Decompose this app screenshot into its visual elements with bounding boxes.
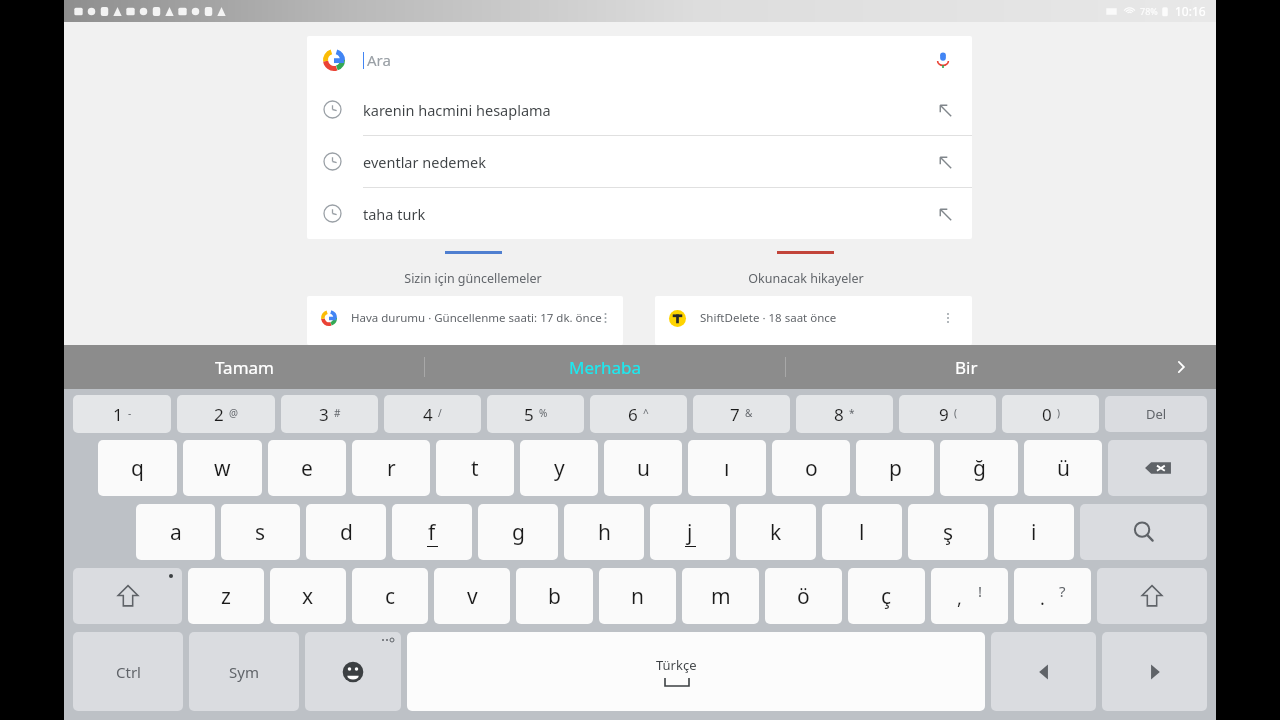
staticText: r [387, 454, 396, 483]
button[interactable]: Backspace [1108, 440, 1207, 496]
button[interactable]: Okunacak hikayeler [639, 251, 972, 287]
button[interactable]: Shift [1097, 568, 1207, 624]
staticText: taha turk [363, 204, 426, 224]
button[interactable]: s [221, 504, 300, 560]
button[interactable]: f [392, 504, 472, 560]
button[interactable]: taha turk [307, 188, 972, 239]
button[interactable]: Voice search [930, 47, 956, 73]
button[interactable]: 0 [1002, 395, 1099, 433]
button[interactable]: 6 [590, 395, 687, 433]
staticText: ShiftDelete · 18 saat önce [700, 310, 837, 326]
button[interactable]: 4 [384, 395, 481, 433]
button[interactable]: ü [1024, 440, 1102, 496]
staticText: ö [797, 582, 810, 611]
button[interactable]: Search [1080, 504, 1207, 560]
staticText: - [128, 406, 132, 420]
button[interactable]: w [183, 440, 262, 496]
button[interactable]: More options [602, 308, 609, 328]
button[interactable]: 8 [796, 395, 893, 433]
button[interactable]: ş [908, 504, 988, 560]
staticText: 9 [939, 403, 949, 426]
staticText: 7 [730, 403, 740, 426]
staticText: b [548, 582, 561, 611]
button[interactable]: Space [407, 632, 985, 711]
button[interactable]: e [268, 440, 346, 496]
button[interactable]: ö [765, 568, 842, 624]
button[interactable]: Tamam [64, 345, 424, 389]
button[interactable]: n [599, 568, 676, 624]
staticText: ş [943, 518, 954, 547]
staticText: . [1040, 586, 1045, 611]
staticText: Sym [229, 662, 259, 682]
staticText: ı [724, 454, 730, 483]
button[interactable]: l [822, 504, 902, 560]
button[interactable]: Previous [991, 632, 1096, 711]
button[interactable]: p [856, 440, 934, 496]
button[interactable]: Ctrl [73, 632, 183, 711]
button[interactable]: Del [1105, 396, 1207, 432]
button[interactable]: 2 [177, 395, 275, 433]
button[interactable]: ShiftDelete · 18 saat önce [655, 296, 972, 345]
button[interactable]: eventlar nedemek [307, 136, 972, 188]
button[interactable]: u [604, 440, 682, 496]
button[interactable]: t [436, 440, 514, 496]
button[interactable]: y [520, 440, 598, 496]
staticText: karenin hacmini hesaplama [363, 100, 551, 120]
button[interactable]: karenin hacmini hesaplama [307, 84, 972, 136]
button[interactable]: More suggestions [1146, 345, 1216, 389]
button[interactable]: ğ [940, 440, 1018, 496]
button[interactable]: More options [938, 308, 958, 328]
staticText: Sizin için güncellemeler [404, 270, 542, 287]
button[interactable]: g [478, 504, 558, 560]
button[interactable]: ? [1014, 568, 1091, 624]
staticText: 3 [319, 403, 329, 426]
button[interactable]: 9 [899, 395, 996, 433]
button[interactable]: d [306, 504, 386, 560]
button[interactable]: Merhaba [425, 345, 785, 389]
button[interactable]: Emoji [305, 632, 401, 711]
button[interactable]: Ara [307, 36, 972, 84]
button[interactable]: Sizin için güncellemeler [307, 251, 639, 287]
staticText: & [745, 406, 753, 420]
staticText: g [512, 518, 525, 547]
button[interactable]: Next [1102, 632, 1207, 711]
button[interactable]: a [136, 504, 215, 560]
button[interactable]: b [516, 568, 593, 624]
button[interactable]: r [352, 440, 430, 496]
staticText: q [131, 454, 144, 483]
staticText: t [471, 454, 479, 483]
button[interactable]: 1 [73, 395, 171, 433]
button[interactable]: j [650, 504, 730, 560]
button[interactable]: ! [931, 568, 1008, 624]
staticText: Merhaba [569, 356, 642, 379]
button[interactable]: Shift [73, 568, 182, 624]
button[interactable]: Sym [189, 632, 299, 711]
button[interactable]: ı [688, 440, 766, 496]
button[interactable]: c [352, 568, 428, 624]
button[interactable]: ç [848, 568, 925, 624]
staticText: ( [954, 406, 957, 420]
staticText: f [428, 518, 436, 547]
button[interactable]: 7 [693, 395, 790, 433]
button[interactable]: k [736, 504, 816, 560]
staticText: m [711, 582, 731, 611]
staticText: i [1031, 518, 1037, 547]
button[interactable]: 3 [281, 395, 378, 433]
staticText: ^ [643, 406, 649, 420]
button[interactable]: o [772, 440, 850, 496]
button[interactable]: Hava durumu · Güncellenme saati: 17 dk. … [307, 296, 623, 345]
button[interactable]: i [994, 504, 1074, 560]
button[interactable]: 5 [487, 395, 584, 433]
button[interactable]: m [682, 568, 759, 624]
staticText: / [438, 406, 442, 420]
button[interactable]: v [434, 568, 510, 624]
button[interactable]: x [270, 568, 346, 624]
button[interactable]: q [98, 440, 177, 496]
staticText: y [554, 454, 565, 483]
button[interactable]: z [188, 568, 264, 624]
button[interactable]: Bir [786, 345, 1146, 389]
button[interactable]: h [564, 504, 644, 560]
other: Insert suggestion [934, 203, 956, 225]
staticText: Türkçe [656, 656, 697, 674]
staticText: Tamam [215, 356, 274, 379]
